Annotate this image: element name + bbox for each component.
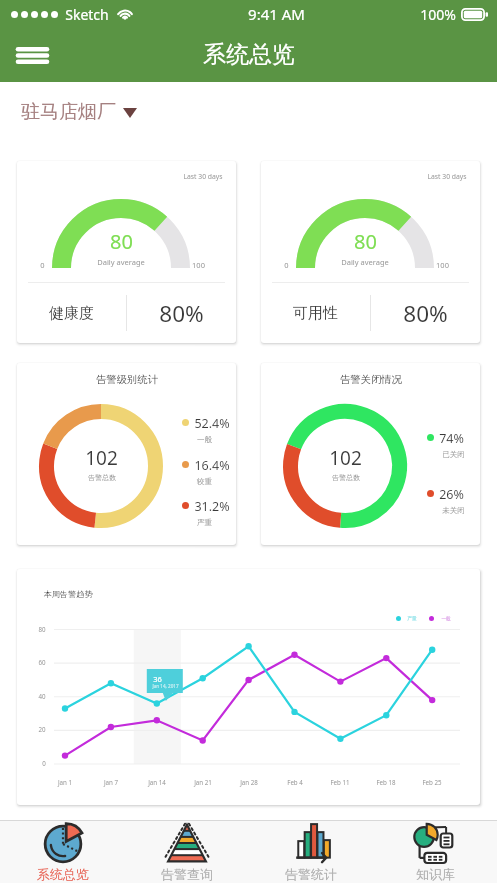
staticText: Last 30 days xyxy=(427,172,467,181)
staticText: 本周告警趋势 xyxy=(43,589,93,599)
staticText: 知识库 xyxy=(416,866,455,882)
staticText: 告警查询 xyxy=(161,866,213,882)
staticText: Jan 1 xyxy=(48,778,82,786)
staticText: 100 xyxy=(436,260,449,270)
staticText: 40 xyxy=(38,692,46,700)
staticText: 0 xyxy=(42,759,46,767)
staticText: 告警总数 xyxy=(332,473,360,482)
staticText: 80 xyxy=(354,228,377,255)
staticText: 102 xyxy=(85,445,118,471)
staticText: 80% xyxy=(403,298,448,329)
staticText: Jan 14 xyxy=(140,778,174,786)
staticText: Feb 18 xyxy=(369,778,403,786)
staticText: 80% xyxy=(159,298,204,329)
staticText: 较重 xyxy=(197,477,212,486)
staticText: 102 xyxy=(329,445,362,471)
staticText: 31.2% xyxy=(194,498,230,515)
staticText: 9:41 AM xyxy=(248,4,305,24)
staticText: Jan 14, 2017 xyxy=(152,683,179,689)
staticText: Last 30 days xyxy=(183,172,223,181)
staticText: 80 xyxy=(38,625,46,633)
staticText: 0 xyxy=(40,260,45,270)
staticText: 一般 xyxy=(197,435,212,444)
button[interactable]: 知识库 xyxy=(373,821,497,883)
button[interactable]: 系统总览 xyxy=(0,821,125,883)
staticText: 16.4% xyxy=(194,457,230,474)
staticText: Jan 7 xyxy=(94,778,128,786)
staticText: Daily average xyxy=(341,257,389,267)
staticText: 80 xyxy=(110,228,133,255)
staticText: Feb 11 xyxy=(323,778,357,786)
staticText: 系统总览 xyxy=(37,866,89,882)
staticText: 告警级别统计 xyxy=(96,373,158,386)
staticText: 60 xyxy=(38,658,46,666)
button[interactable]: 驻马店烟厂 xyxy=(21,100,143,124)
button[interactable]: 告警查询 xyxy=(125,821,249,883)
staticText: 74% xyxy=(439,430,464,447)
staticText: 严重 xyxy=(197,518,212,527)
staticText: 26% xyxy=(439,486,464,503)
staticText: Daily average xyxy=(97,257,145,267)
staticText: 52.4% xyxy=(194,415,230,432)
staticText: 100% xyxy=(420,5,456,24)
staticText: 产量 xyxy=(407,616,417,622)
staticText: 100 xyxy=(192,260,205,270)
staticText: Feb 25 xyxy=(415,778,449,786)
staticText: 可用性 xyxy=(293,304,338,323)
staticText: 20 xyxy=(38,725,46,733)
staticText: Jan 28 xyxy=(232,778,266,786)
staticText: 一般 xyxy=(441,616,451,622)
staticText: 未关闭 xyxy=(442,506,465,515)
staticText: 36 xyxy=(153,674,162,684)
staticText: 健康度 xyxy=(49,304,94,323)
staticText: 告警总数 xyxy=(88,473,116,482)
button[interactable]: 告警统计 xyxy=(249,821,373,883)
staticText: 系统总览 xyxy=(203,40,295,69)
button[interactable]: Open navigation menu xyxy=(10,33,54,77)
staticText: 已关闭 xyxy=(442,450,465,459)
staticText: Sketch xyxy=(65,5,109,24)
staticText: 驻马店烟厂 xyxy=(21,100,116,124)
staticText: Feb 4 xyxy=(278,778,312,786)
staticText: 告警统计 xyxy=(285,866,337,882)
staticText: 告警关闭情况 xyxy=(340,373,402,386)
staticText: Jan 21 xyxy=(186,778,220,786)
staticText: 0 xyxy=(284,260,289,270)
